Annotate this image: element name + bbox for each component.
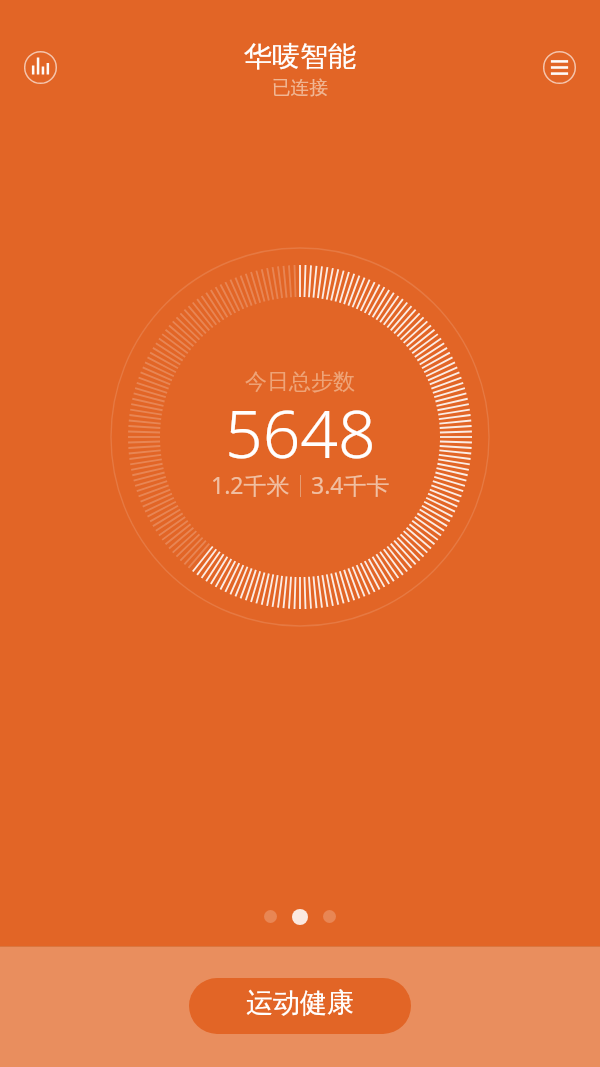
- staticText: 已连接: [272, 76, 328, 99]
- staticText: 华唛智能: [244, 39, 356, 74]
- staticText: 5648: [225, 387, 376, 477]
- button[interactable]: Menu: [537, 45, 582, 90]
- button[interactable]: 运动健康: [189, 978, 411, 1034]
- button[interactable]: Statistics: [18, 45, 63, 90]
- staticText: 今日总步数: [245, 368, 355, 396]
- staticText: 3.4千卡: [311, 469, 390, 500]
- staticText: 1.2千米: [211, 469, 290, 500]
- staticText: 运动健康: [246, 986, 354, 1020]
